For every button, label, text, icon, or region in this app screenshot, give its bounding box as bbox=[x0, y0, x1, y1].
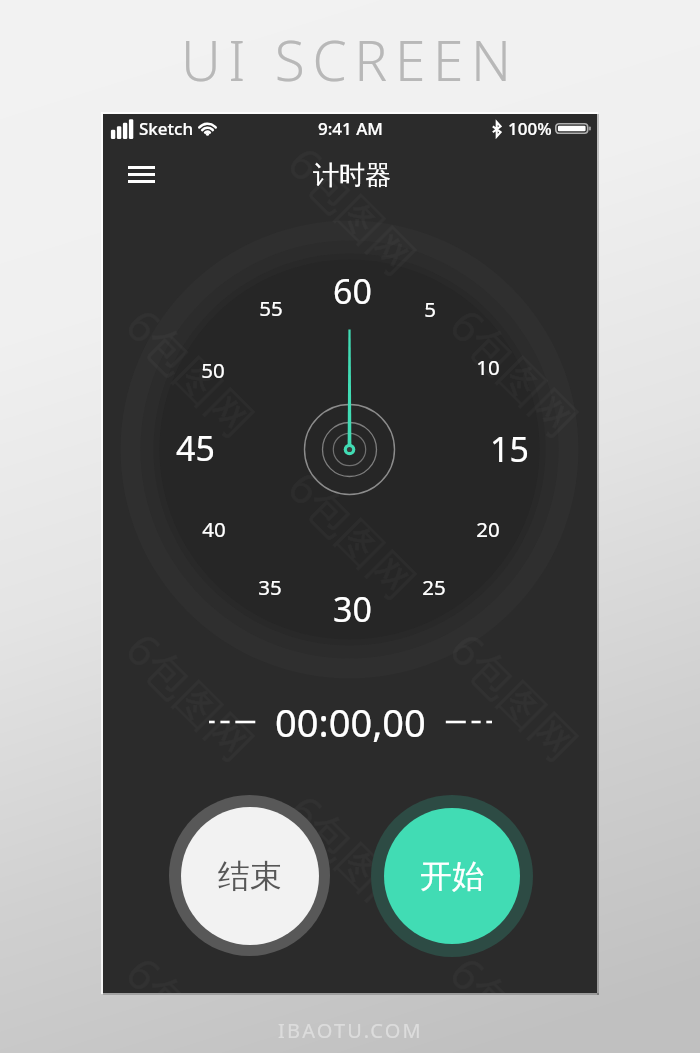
staticText: 9:41 AM bbox=[318, 117, 383, 140]
staticText: 6包图网 bbox=[114, 943, 268, 993]
staticText: 15 bbox=[490, 426, 529, 472]
staticText: 00:00,00 bbox=[275, 696, 426, 748]
staticText: UI SCREEN bbox=[181, 22, 519, 97]
staticText: 20 bbox=[476, 515, 500, 543]
staticText: 计时器 bbox=[313, 159, 391, 192]
staticText: 10 bbox=[476, 353, 500, 381]
staticText: 45 bbox=[176, 425, 215, 471]
staticText: 6包图网 bbox=[114, 619, 268, 773]
staticText: 30 bbox=[333, 586, 372, 632]
staticText: 结束 bbox=[218, 856, 282, 896]
staticText: 35 bbox=[258, 573, 282, 601]
staticText: Sketch bbox=[139, 117, 194, 140]
button[interactable]: Menu bbox=[115, 150, 167, 198]
staticText: 55 bbox=[259, 294, 283, 322]
staticText: 6包图网 bbox=[438, 619, 592, 773]
staticText: 6包图网 bbox=[276, 133, 430, 287]
staticText: 60 bbox=[333, 268, 372, 314]
staticText: 40 bbox=[202, 515, 226, 543]
staticText: 6包图网 bbox=[114, 295, 268, 449]
staticText: 6包图网 bbox=[276, 457, 430, 611]
staticText: 6包图网 bbox=[276, 781, 430, 935]
staticText: 6包图网 bbox=[438, 943, 592, 993]
staticText: 100% bbox=[508, 117, 552, 140]
staticText: 25 bbox=[422, 573, 446, 601]
staticText: 5 bbox=[424, 295, 436, 323]
button[interactable]: 开始 bbox=[371, 795, 533, 957]
button[interactable]: 结束 bbox=[169, 795, 330, 956]
staticText: 6包图网 bbox=[438, 295, 592, 449]
staticText: 6包图网 bbox=[114, 114, 268, 125]
staticText: 开始 bbox=[420, 856, 484, 896]
staticText: 50 bbox=[201, 356, 225, 384]
staticText: IBAOTU.COM bbox=[278, 1017, 423, 1044]
